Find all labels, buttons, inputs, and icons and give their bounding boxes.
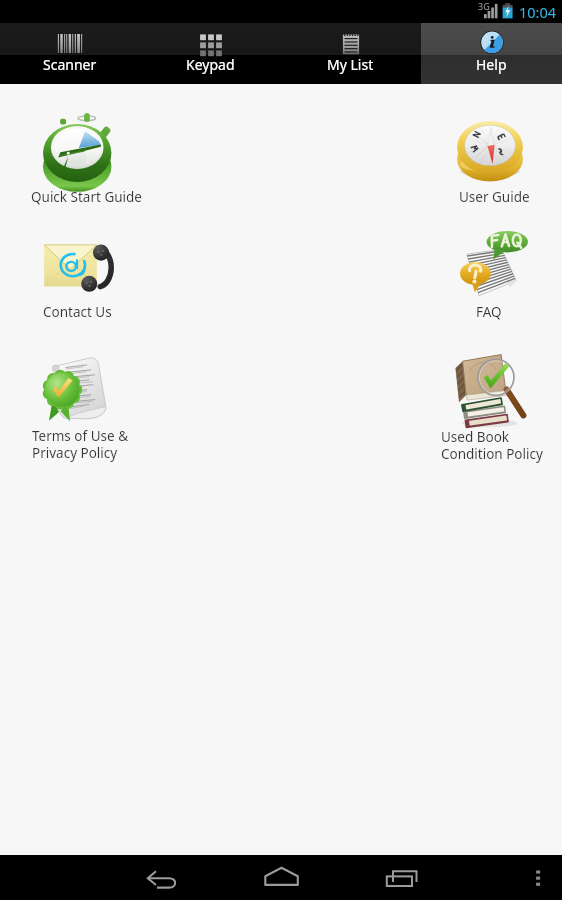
staticText: Help (476, 55, 507, 74)
staticText: User Guide (459, 188, 530, 206)
button[interactable]: Recent apps (371, 855, 431, 900)
staticText: Quick Start Guide (31, 188, 142, 206)
button[interactable] (400, 230, 562, 298)
button[interactable]: Keypad (140, 23, 280, 84)
staticText: Contact Us (43, 303, 112, 321)
button[interactable]: Scanner (0, 23, 140, 84)
staticText: Terms of Use & Privacy Policy (32, 427, 129, 462)
staticText: My List (327, 55, 374, 74)
button[interactable]: Back (132, 855, 192, 900)
button[interactable]: Home (251, 855, 311, 900)
staticText: 10:04 (519, 2, 557, 22)
button[interactable] (400, 112, 562, 182)
button[interactable] (401, 354, 562, 428)
button[interactable] (0, 241, 167, 295)
staticText: Keypad (186, 55, 235, 74)
staticText: 3G (478, 0, 490, 12)
staticText: Used Book Condition Policy (441, 428, 543, 463)
staticText: FAQ (476, 303, 502, 321)
button[interactable]: My List (280, 23, 421, 84)
button[interactable] (0, 355, 167, 421)
button[interactable]: More options (522, 855, 554, 900)
button[interactable] (0, 112, 167, 182)
staticText: Scanner (43, 55, 97, 74)
button[interactable]: Help (421, 23, 562, 84)
